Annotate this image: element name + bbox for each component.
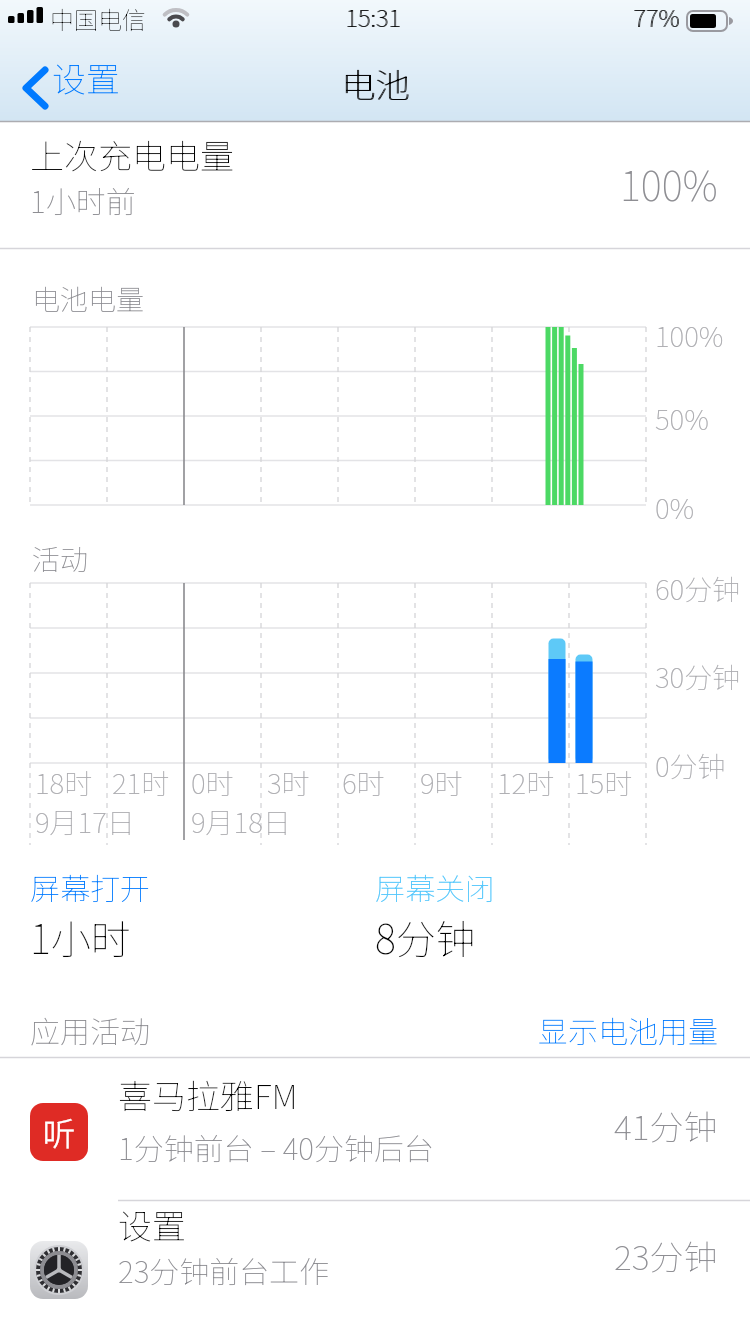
staticText: 12时 (497, 762, 555, 803)
staticText: 9月18日 (191, 801, 291, 842)
staticText: 电池电量 (32, 278, 145, 319)
staticText: 上次充电电量 (30, 130, 234, 179)
staticText: 9时 (420, 762, 463, 803)
staticText: 电池 (342, 59, 410, 108)
staticText: 应用活动 (30, 1008, 150, 1051)
staticText: 77% (634, 0, 681, 34)
staticText: 100% (620, 155, 718, 213)
button[interactable]: 设置 (0, 1200, 750, 1334)
staticText: 设置 (118, 1200, 186, 1249)
staticText: 设置 (52, 53, 120, 102)
staticText: 0时 (191, 762, 234, 803)
button[interactable]: 设置 (10, 50, 140, 112)
button[interactable]: 听 (0, 1062, 750, 1200)
staticText: 0% (655, 487, 695, 528)
staticText: 显示电池用量 (538, 1008, 718, 1051)
staticText: 1小时 (30, 908, 131, 966)
staticText: 100% (655, 315, 724, 356)
staticText: 23分钟 (614, 1231, 718, 1280)
staticText: 15时 (575, 762, 633, 803)
staticText: 15:31 (345, 0, 401, 34)
staticText: 50% (655, 398, 709, 439)
staticText: 8分钟 (375, 908, 476, 966)
staticText: 6时 (342, 762, 385, 803)
staticText: 9月17日 (35, 801, 135, 842)
staticText: 听 (43, 1109, 76, 1155)
staticText: 0分钟 (655, 745, 726, 786)
staticText: 1分钟前台 – 40分钟后台 (118, 1125, 434, 1168)
staticText: 60分钟 (655, 568, 741, 609)
staticText: 屏幕关闭 (375, 865, 495, 908)
staticText: 15:31 (346, 0, 402, 34)
staticText: 电池 (341, 59, 409, 108)
staticText: 21时 (112, 762, 170, 803)
staticText: 中国电信 (50, 1, 146, 36)
staticText: 77% (633, 0, 680, 34)
staticText: 18时 (35, 762, 93, 803)
button[interactable]: 显示电池用量 (400, 1008, 718, 1052)
staticText: 3时 (267, 762, 310, 803)
staticText: 1小时前 (30, 178, 136, 221)
staticText: 41分钟 (614, 1101, 718, 1150)
staticText: 活动 (32, 538, 89, 579)
staticText: 屏幕打开 (30, 865, 150, 908)
staticText: 30分钟 (655, 656, 741, 697)
staticText: 23分钟前台工作 (118, 1248, 330, 1291)
staticText: 喜马拉雅FM (118, 1070, 298, 1119)
